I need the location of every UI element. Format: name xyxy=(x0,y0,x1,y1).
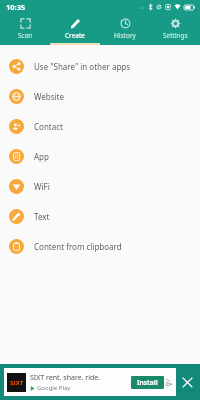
button[interactable]: Text xyxy=(0,201,200,231)
staticText: SIXT rent. share. ride. xyxy=(30,373,101,383)
button[interactable]: Use "Share" in other apps xyxy=(0,51,200,81)
staticText: 10:35 xyxy=(6,2,26,12)
button[interactable]: Content from clipboard xyxy=(0,231,200,261)
staticText: WiFi xyxy=(34,181,50,192)
staticText: Scan xyxy=(18,31,33,40)
button[interactable]: Create xyxy=(50,14,100,43)
button[interactable]: App xyxy=(0,141,200,171)
staticText: Use "Share" in other apps xyxy=(34,61,131,72)
button[interactable]: Install xyxy=(131,376,164,389)
staticText: History xyxy=(114,31,136,40)
staticText: Text xyxy=(34,211,50,222)
staticText: App xyxy=(34,151,49,162)
button[interactable]: WiFi xyxy=(0,171,200,201)
staticText: Google Play xyxy=(37,384,71,392)
button[interactable]: Settings xyxy=(150,14,200,43)
button[interactable]: SIXT xyxy=(4,368,176,396)
staticText: Contact xyxy=(34,121,63,132)
button[interactable]: History xyxy=(100,14,150,43)
staticText: Content from clipboard xyxy=(34,241,122,252)
staticText: Website xyxy=(34,91,65,102)
staticText: Settings xyxy=(163,31,188,40)
staticText: Install xyxy=(137,378,158,387)
staticText: SIXT xyxy=(10,379,24,387)
button[interactable]: Close ad xyxy=(176,368,198,396)
button[interactable]: Ad info xyxy=(166,379,173,386)
button[interactable]: Scan xyxy=(0,14,50,43)
button[interactable]: Contact xyxy=(0,111,200,141)
button[interactable]: Website xyxy=(0,81,200,111)
staticText: Create xyxy=(65,31,85,40)
